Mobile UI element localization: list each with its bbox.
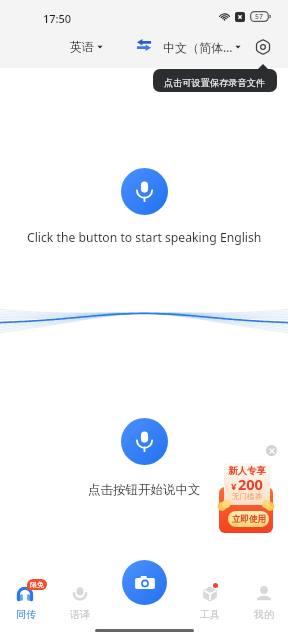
staticText: 同传 bbox=[16, 608, 36, 621]
staticText: 点击可设置保存录音文件 bbox=[164, 77, 266, 89]
staticText: 中文（简体… bbox=[163, 39, 233, 55]
staticText: 我的 bbox=[254, 608, 274, 621]
staticText: 200 bbox=[238, 474, 263, 494]
staticText: 点击按钮开始说中文 bbox=[88, 482, 201, 498]
button[interactable]: 中文（简体… bbox=[163, 39, 241, 55]
button[interactable]: 新人专享 bbox=[224, 463, 270, 505]
staticText: Click the button to start speaking Engli… bbox=[27, 229, 262, 246]
button[interactable]: Start speaking bbox=[121, 418, 168, 465]
button[interactable]: 立即使用 bbox=[228, 511, 269, 527]
button[interactable]: 工具 bbox=[184, 578, 236, 628]
button[interactable]: 我的 bbox=[238, 578, 288, 628]
staticText: 新人专享 bbox=[228, 465, 266, 477]
staticText: 无门槛券 bbox=[232, 492, 262, 501]
button[interactable]: Settings bbox=[255, 39, 271, 55]
staticText: 英语 bbox=[70, 39, 94, 54]
button[interactable]: 英语 bbox=[70, 39, 103, 54]
staticText: ¥ bbox=[231, 480, 237, 493]
button[interactable]: Start speaking bbox=[121, 168, 168, 215]
staticText: 语译 bbox=[70, 608, 90, 621]
staticText: 17:50 bbox=[43, 11, 72, 26]
button[interactable]: Close bbox=[266, 445, 277, 456]
staticText: 限免 bbox=[30, 580, 44, 589]
button[interactable] bbox=[219, 487, 273, 533]
button[interactable]: Camera translate bbox=[122, 560, 167, 605]
staticText: 57 bbox=[255, 12, 264, 22]
button[interactable]: Swap languages bbox=[136, 37, 152, 53]
button[interactable]: 限免 bbox=[0, 578, 52, 628]
staticText: 立即使用 bbox=[232, 514, 266, 525]
button[interactable]: 语译 bbox=[54, 578, 106, 628]
staticText: 工具 bbox=[200, 608, 220, 621]
